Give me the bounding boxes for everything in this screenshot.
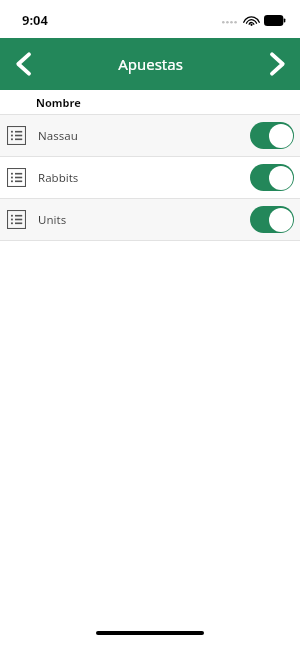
button[interactable]: Rabbits: [0, 157, 300, 198]
button[interactable]: Nassau: [0, 115, 300, 156]
button[interactable]: Toggle: [250, 206, 294, 233]
staticText: Nassau: [38, 128, 78, 144]
button[interactable]: Back: [0, 41, 46, 87]
staticText: Apuestas: [118, 54, 183, 74]
button[interactable]: Toggle: [250, 122, 294, 149]
button[interactable]: Forward: [254, 41, 300, 87]
button[interactable]: Toggle: [250, 164, 294, 191]
staticText: Rabbits: [38, 170, 79, 186]
staticText: 9:04: [22, 11, 48, 29]
staticText: Nombre: [36, 95, 81, 110]
button[interactable]: Units: [0, 199, 300, 240]
staticText: Units: [38, 212, 67, 228]
